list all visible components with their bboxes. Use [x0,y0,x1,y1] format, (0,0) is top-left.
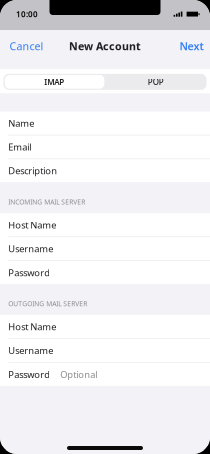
button[interactable]: Host Name [0,315,210,338]
button[interactable]: Next [179,33,210,59]
staticText: Password [8,368,50,380]
button[interactable]: Name [0,111,210,135]
button[interactable]: POP [105,74,206,90]
button[interactable]: Description [0,159,210,182]
button[interactable]: Username [0,339,210,362]
staticText: Host Name [8,320,56,333]
button[interactable]: Password [0,363,210,386]
staticText: Username [8,242,53,255]
staticText: Password [8,266,50,279]
staticText: Name [8,117,34,129]
button[interactable]: Username [0,237,210,260]
staticText: IMAP [44,76,64,87]
staticText: Next [179,39,203,53]
staticText: New Account [69,39,141,53]
button[interactable]: Host Name [0,213,210,237]
staticText: Optional [60,368,97,380]
staticText: Username [8,344,53,357]
staticText: POP [148,76,164,87]
button[interactable]: Email [0,135,210,159]
staticText: OUTGOING MAIL SERVER [8,299,87,308]
button[interactable]: IMAP [3,74,105,90]
staticText: Email [8,141,31,153]
staticText: Host Name [8,219,56,231]
button[interactable]: Password [0,261,210,284]
button[interactable]: Cancel [0,33,43,59]
staticText: INCOMING MAIL SERVER [8,197,85,206]
staticText: 10:00 [16,9,38,19]
staticText: Cancel [9,39,43,53]
staticText: Description [8,165,57,177]
